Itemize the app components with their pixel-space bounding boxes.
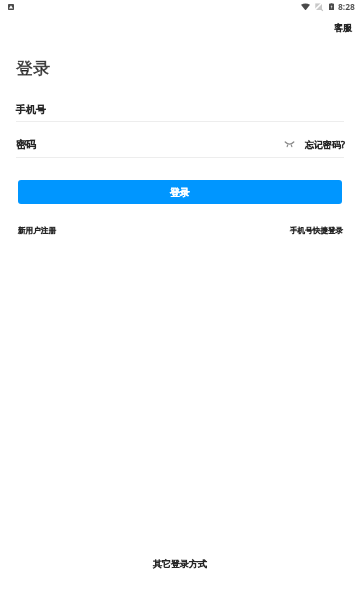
staticText: 其它登录方式	[153, 558, 207, 569]
staticText: 其它登录方式	[153, 558, 207, 569]
staticText: 登录	[16, 58, 50, 79]
staticText: 手机号	[16, 103, 46, 116]
staticText: 密码	[16, 138, 36, 151]
staticText: 登录	[16, 58, 50, 79]
staticText: 客服	[334, 22, 352, 33]
staticText: 新用户注册	[18, 226, 56, 236]
button[interactable]: 登录	[18, 180, 342, 204]
staticText: 密码	[16, 138, 36, 151]
staticText: 手机号快捷登录	[290, 226, 344, 236]
button[interactable]: 新用户注册	[18, 226, 56, 236]
staticText: 8:28	[338, 1, 355, 13]
staticText: 手机号	[16, 103, 46, 116]
staticText: 新用户注册	[18, 226, 56, 236]
button[interactable]: 忘记密码?	[305, 138, 345, 150]
staticText: 客服	[334, 22, 352, 33]
button[interactable]: 手机号快捷登录	[290, 226, 344, 236]
staticText: 忘记密码?	[305, 138, 345, 150]
staticText: 手机号快捷登录	[290, 226, 344, 236]
button[interactable]: Show password	[279, 135, 300, 152]
button[interactable]: 其它登录方式	[153, 558, 207, 569]
button[interactable]: 客服	[330, 20, 356, 35]
staticText: 登录	[170, 186, 190, 199]
staticText: 登录	[170, 186, 190, 199]
staticText: 忘记密码?	[305, 138, 345, 150]
